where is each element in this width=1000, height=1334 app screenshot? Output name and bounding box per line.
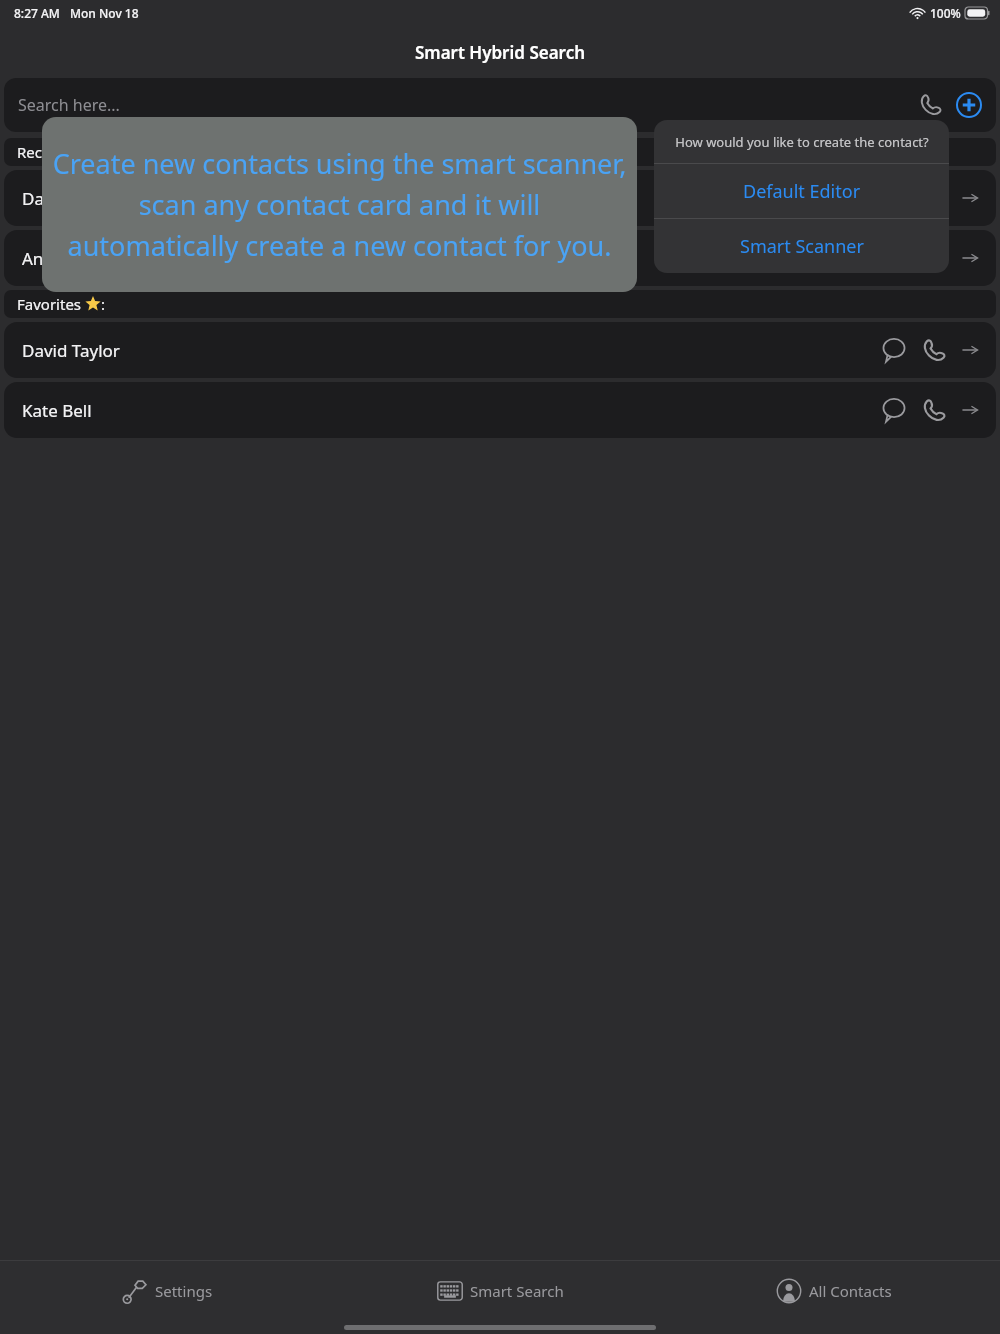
staticText: Search here... (18, 94, 120, 116)
staticText: Anna Haro (22, 247, 107, 270)
button[interactable]: Open David Taylor (954, 334, 986, 366)
button[interactable]: Open Anna Haro (954, 242, 986, 274)
button[interactable]: Default Editor (654, 164, 949, 218)
button[interactable]: Search here... (4, 78, 996, 132)
button[interactable]: Smart Scanner (654, 219, 949, 273)
button[interactable]: Kate Bell (4, 382, 996, 438)
staticText: David Taylor (22, 187, 120, 210)
button[interactable]: Open Kate Bell (954, 394, 986, 426)
staticText: 100% (930, 5, 961, 21)
staticText: How would you like to create the contact… (675, 133, 929, 151)
staticText: Default Editor (743, 179, 861, 204)
staticText: Mon Nov 18 (70, 5, 139, 21)
button[interactable]: Create new contacts using the smart scan… (42, 117, 637, 292)
staticText: : (101, 294, 106, 314)
button[interactable]: Smart Search (334, 1261, 667, 1320)
button[interactable]: Call David Taylor (914, 330, 954, 370)
button[interactable]: Settings (0, 1261, 334, 1320)
button[interactable]: Message David Taylor (874, 330, 914, 370)
staticText: Kate Bell (22, 399, 92, 422)
staticText: All Contacts (809, 1281, 892, 1301)
button[interactable]: Anna Haro (4, 230, 996, 286)
staticText: David Taylor (22, 339, 120, 362)
button[interactable]: Call Anna Haro (914, 238, 954, 278)
button[interactable]: Call Kate Bell (914, 390, 954, 430)
staticText: Smart Hybrid Search (415, 41, 586, 64)
button[interactable]: Call (914, 88, 948, 122)
button[interactable]: All Contacts (667, 1261, 1000, 1320)
button[interactable]: David Taylor (4, 170, 996, 226)
staticText: Settings (155, 1281, 213, 1301)
staticText: 8:27 AM (14, 5, 60, 21)
button[interactable]: Call David Taylor (914, 178, 954, 218)
staticText: Smart Search (470, 1281, 564, 1301)
button[interactable]: Message Anna Haro (874, 238, 914, 278)
button[interactable]: Message Kate Bell (874, 390, 914, 430)
button[interactable]: Add contact (952, 88, 986, 122)
button[interactable]: David Taylor (4, 322, 996, 378)
staticText: Create new contacts using the smart scan… (52, 145, 627, 264)
button[interactable]: Open David Taylor (954, 182, 986, 214)
staticText: Recents: (17, 142, 77, 162)
staticText: Smart Scanner (740, 234, 864, 259)
staticText: Favorites (17, 294, 85, 314)
